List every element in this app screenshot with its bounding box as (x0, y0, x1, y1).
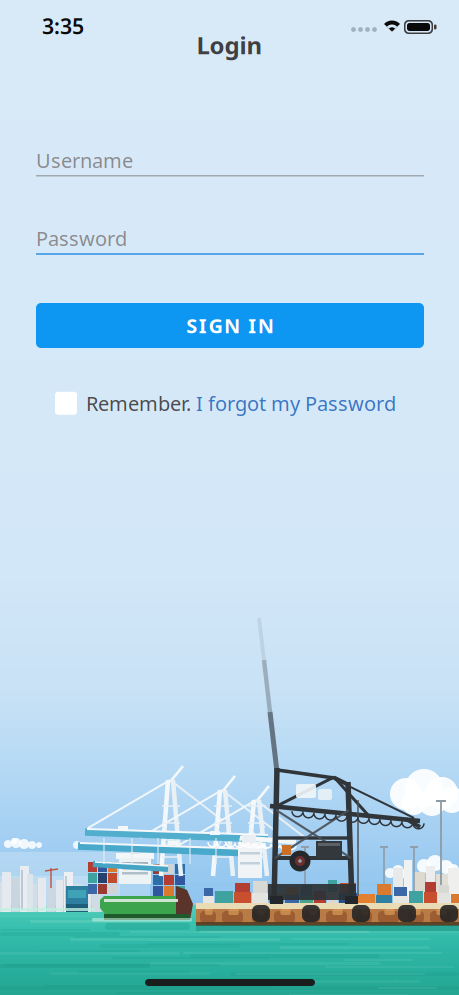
button[interactable]: Remember (55, 392, 77, 415)
staticText: Password (36, 225, 127, 252)
staticText: Remember. (86, 390, 191, 417)
staticText: Login (196, 29, 262, 61)
staticText: SIGN IN (186, 312, 274, 339)
button[interactable]: Username (36, 143, 424, 177)
button[interactable]: SIGN IN (36, 303, 424, 348)
button[interactable]: Password (36, 221, 424, 255)
staticText: Username (36, 147, 133, 174)
button[interactable]: I forgot my Password (196, 390, 396, 417)
staticText: 3:35 (42, 12, 84, 40)
staticText: I forgot my Password (196, 390, 396, 417)
